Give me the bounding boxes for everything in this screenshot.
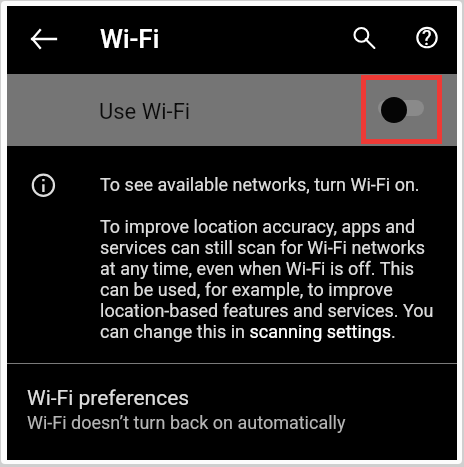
button[interactable]: Wi-Fi preferences [7,364,457,460]
button[interactable]: Help [404,15,449,60]
staticText: To see available networks, turn Wi-Fi on… [100,174,420,195]
other: Information [30,171,57,198]
button[interactable]: Use Wi-Fi [7,74,457,146]
staticText: Wi-Fi [100,24,160,54]
staticText: Wi-Fi preferences [27,386,190,411]
staticText: ? [422,26,432,49]
staticText: Use Wi-Fi [99,99,191,125]
button[interactable]: Use Wi-Fi toggle [373,92,429,128]
staticText: To improve location accuracy, apps and s… [100,216,438,342]
staticText: Wi-Fi doesn’t turn back on automatically [27,412,346,433]
button[interactable]: Search [339,13,384,58]
button[interactable]: Back [21,16,66,61]
